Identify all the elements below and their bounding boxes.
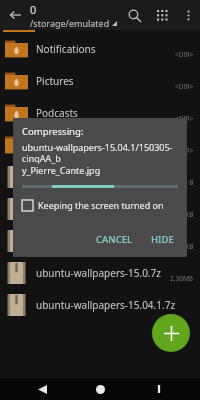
staticText: 0 <box>30 2 37 17</box>
staticText: /storage/emulated <box>30 17 110 29</box>
staticText: <DIR> <box>175 50 194 59</box>
button[interactable]: libusb-1.0.21.zip <box>0 225 200 257</box>
staticText: Compressing: <box>22 125 84 138</box>
button[interactable]: CANCEL <box>92 231 137 248</box>
staticText: ubuntu-wallpapers-15.04.1/150305-cinqAA_… <box>22 141 178 177</box>
button[interactable]: ubuntu-wallpapers-15.04.1.7z <box>0 289 200 321</box>
staticText: 2.36MB <box>170 274 194 283</box>
button[interactable]: Pictures <box>0 65 200 97</box>
button[interactable]: Grid view <box>148 1 176 29</box>
staticText: libusb-1.0.21.zip <box>36 234 174 248</box>
staticText: HIDE <box>151 233 174 246</box>
staticText: Notifications <box>36 42 175 56</box>
button[interactable]: Search <box>120 1 148 29</box>
staticText: ubuntu-wallpapers-15.04.1.7z <box>36 298 194 312</box>
staticText: CANCEL <box>96 233 133 246</box>
staticText: Ringtones <box>36 138 175 152</box>
staticText: <DIR> <box>175 146 194 155</box>
button[interactable]: Podcasts <box>0 97 200 129</box>
staticText: 319.07KB <box>165 210 194 219</box>
button[interactable]: Back <box>25 378 59 400</box>
button[interactable]: More options <box>176 3 200 27</box>
button[interactable]: ubuntu-wallpapers-15.0.7z <box>0 257 200 289</box>
staticText: IFFSpecs.lzh <box>36 202 165 216</box>
button[interactable]: Notifications <box>0 33 200 65</box>
staticText: 186KB <box>174 242 194 251</box>
button[interactable]: Home <box>83 378 117 400</box>
button[interactable]: Back <box>0 0 30 30</box>
button[interactable]: Download.7z <box>0 161 200 193</box>
button[interactable]: HIDE <box>147 231 178 248</box>
button[interactable]: Keeping the screen turned on <box>22 199 164 211</box>
button[interactable]: Add <box>152 314 190 352</box>
staticText: Keeping the screen turned on <box>38 199 164 211</box>
button[interactable]: IFFSpecs.lzh <box>0 193 200 225</box>
staticText: <DIR> <box>175 114 194 123</box>
staticText: <DIR> <box>175 82 194 91</box>
staticText: Podcasts <box>36 106 175 120</box>
staticText: ubuntu-wallpapers-15.0.7z <box>36 266 170 280</box>
staticText: Download.7z <box>36 170 180 184</box>
staticText: Pictures <box>36 74 175 88</box>
button[interactable]: Ringtones <box>0 129 200 161</box>
button[interactable]: Recents <box>142 378 176 400</box>
staticText: 90 B <box>180 178 194 187</box>
